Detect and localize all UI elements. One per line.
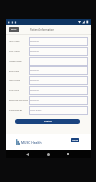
button[interactable]: Logout [71, 138, 79, 142]
staticText: BACK [11, 28, 17, 31]
staticText: Injury Date [9, 79, 20, 82]
staticText: Referring Physician [9, 99, 28, 102]
staticText: Peter Babel [30, 109, 42, 112]
staticText: Required [30, 89, 39, 92]
staticText: MUSC Health [21, 140, 42, 144]
staticText: Required [30, 69, 39, 72]
staticText: Submitted By [9, 109, 23, 112]
button[interactable]: Required [29, 86, 88, 95]
staticText: Logout [72, 139, 78, 141]
button[interactable]: Required [29, 66, 88, 75]
button[interactable]: Peter Babel [29, 106, 88, 115]
button[interactable]: Required [29, 76, 88, 85]
staticText: SUBMIT [44, 120, 52, 123]
staticText: Required [30, 99, 39, 102]
button[interactable] [29, 57, 88, 66]
staticText: Required [30, 40, 39, 43]
button[interactable]: Recent apps [65, 151, 71, 157]
button[interactable]: SUBMIT [15, 119, 80, 124]
staticText: Required [30, 50, 39, 53]
button[interactable]: Home [45, 151, 51, 157]
staticText: Patient Information [30, 28, 54, 32]
button[interactable]: Required [29, 96, 88, 105]
staticText: Middle Initial [9, 60, 22, 63]
staticText: Required [30, 79, 39, 82]
button[interactable]: Back [24, 151, 30, 157]
staticText: First Name [9, 50, 20, 53]
staticText: Last Name [9, 40, 20, 43]
button[interactable]: BACK [9, 27, 19, 32]
button[interactable]: Required [29, 47, 88, 56]
staticText: Scan Type [9, 89, 19, 92]
staticText: Birth Date [9, 70, 19, 73]
button[interactable]: Required [29, 37, 88, 46]
